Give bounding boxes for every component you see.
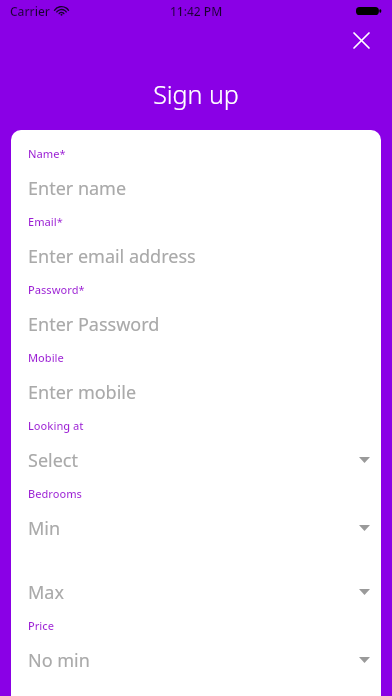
staticText: Sign up [153,77,239,111]
staticText: No min [28,648,90,673]
button[interactable]: Select [11,443,381,477]
staticText: Password* [28,282,85,297]
staticText: Mobile [28,350,64,365]
staticText: Enter mobile [28,380,137,405]
button[interactable]: Enter name [11,171,381,205]
button[interactable]: Min [11,511,381,545]
button[interactable]: Max [11,575,381,609]
button[interactable]: No min [11,643,381,677]
staticText: 11:42 PM [170,3,223,19]
staticText: Looking at [28,418,84,433]
staticText: Name* [28,146,66,161]
staticText: Price [28,618,55,633]
staticText: Enter name [28,176,127,201]
staticText: Enter Password [28,312,160,337]
button[interactable]: Enter mobile [11,375,381,409]
staticText: Select [28,448,78,473]
staticText: Carrier [10,3,50,19]
staticText: Max [28,580,64,605]
staticText: Enter email address [28,244,196,269]
button[interactable]: Enter Password [11,307,381,341]
staticText: Bedrooms [28,486,82,501]
staticText: Min [28,516,61,541]
button[interactable]: Close [346,25,376,55]
button[interactable]: Enter email address [11,239,381,273]
staticText: Email* [28,214,63,229]
